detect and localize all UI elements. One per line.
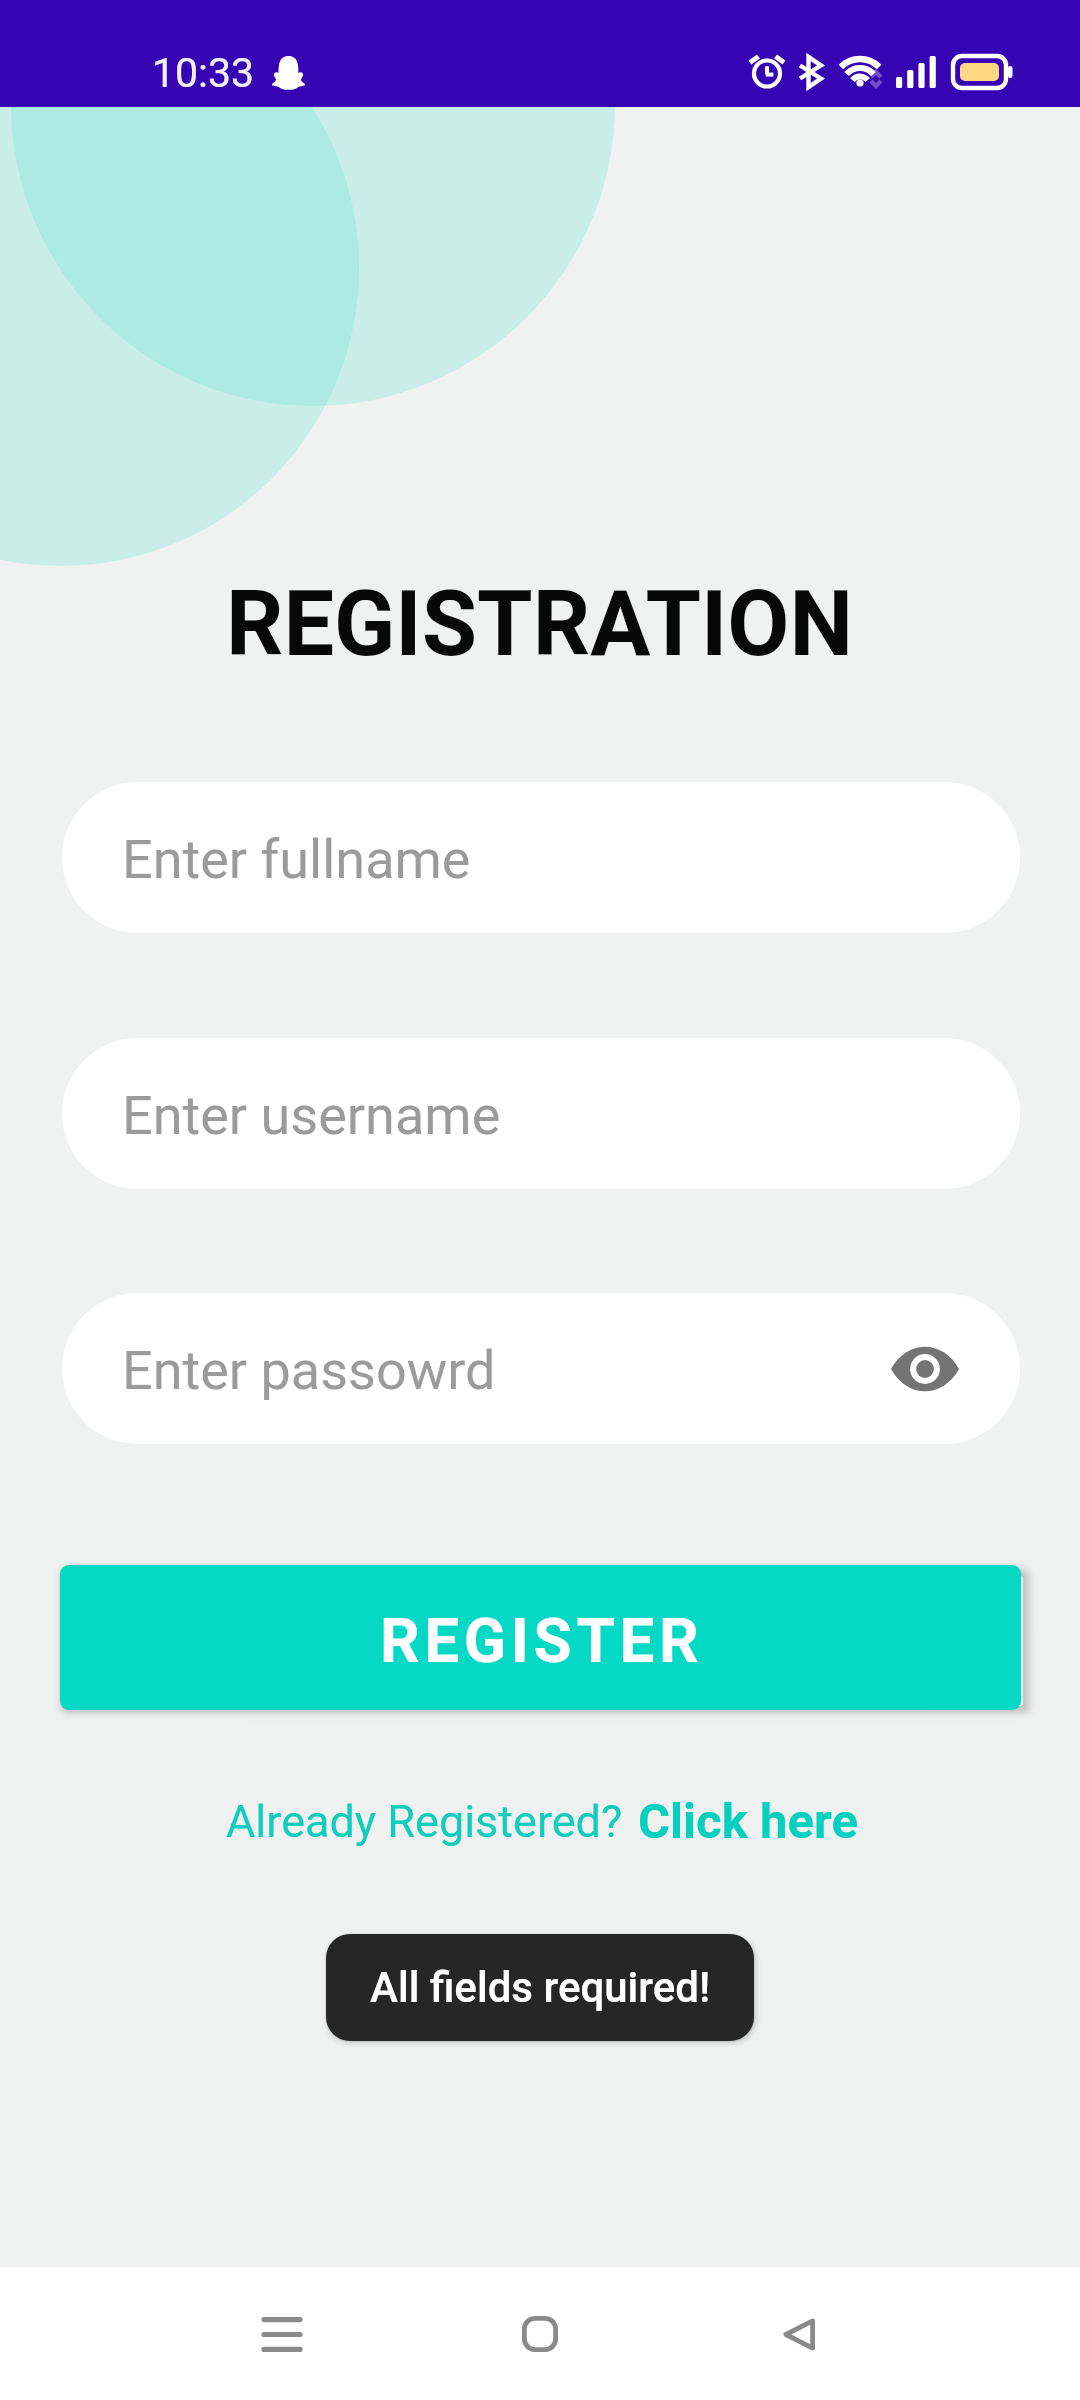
button[interactable]: Enter passowrd [62,1293,1020,1444]
staticText: Enter passowrd [122,1339,496,1402]
staticText: Enter fullname [122,828,471,891]
button[interactable]: REGISTER [60,1565,1021,1710]
button[interactable]: Show password [870,1314,980,1424]
staticText: Click here [638,1793,858,1850]
staticText: 10:33 [152,49,255,97]
button[interactable]: Recent apps [222,2274,342,2394]
staticText: REGISTRATION [226,572,854,677]
staticText: All fields required! [370,1963,711,2012]
button[interactable]: Enter fullname [62,782,1020,933]
staticText: Already Registered? [226,1795,623,1848]
staticText: Enter username [122,1084,501,1147]
button[interactable]: Already Registered? [226,1793,858,1850]
button[interactable]: Back [738,2274,858,2394]
button[interactable]: Home [480,2274,600,2394]
button[interactable]: Enter username [62,1038,1020,1189]
staticText: REGISTER [380,1604,704,1677]
